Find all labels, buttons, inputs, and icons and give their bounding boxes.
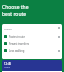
button[interactable]: Transit: [4, 24, 60, 32]
staticText: Choose the: [2, 4, 29, 11]
staticText: best route: [2, 11, 27, 18]
staticText: Less walking: [9, 49, 25, 53]
staticText: Leave: [4, 66, 10, 69]
staticText: Fastest route: [9, 35, 25, 39]
button[interactable]: Fewest transfers: [4, 40, 60, 47]
button[interactable]: Less walking: [4, 47, 60, 54]
button[interactable]: 12:45: [2, 60, 62, 71]
staticText: Fewest transfers: [9, 42, 30, 46]
staticText: 12:45: [4, 62, 12, 66]
button[interactable]: Fastest route: [4, 33, 60, 40]
staticText: Transit: [4, 27, 12, 30]
